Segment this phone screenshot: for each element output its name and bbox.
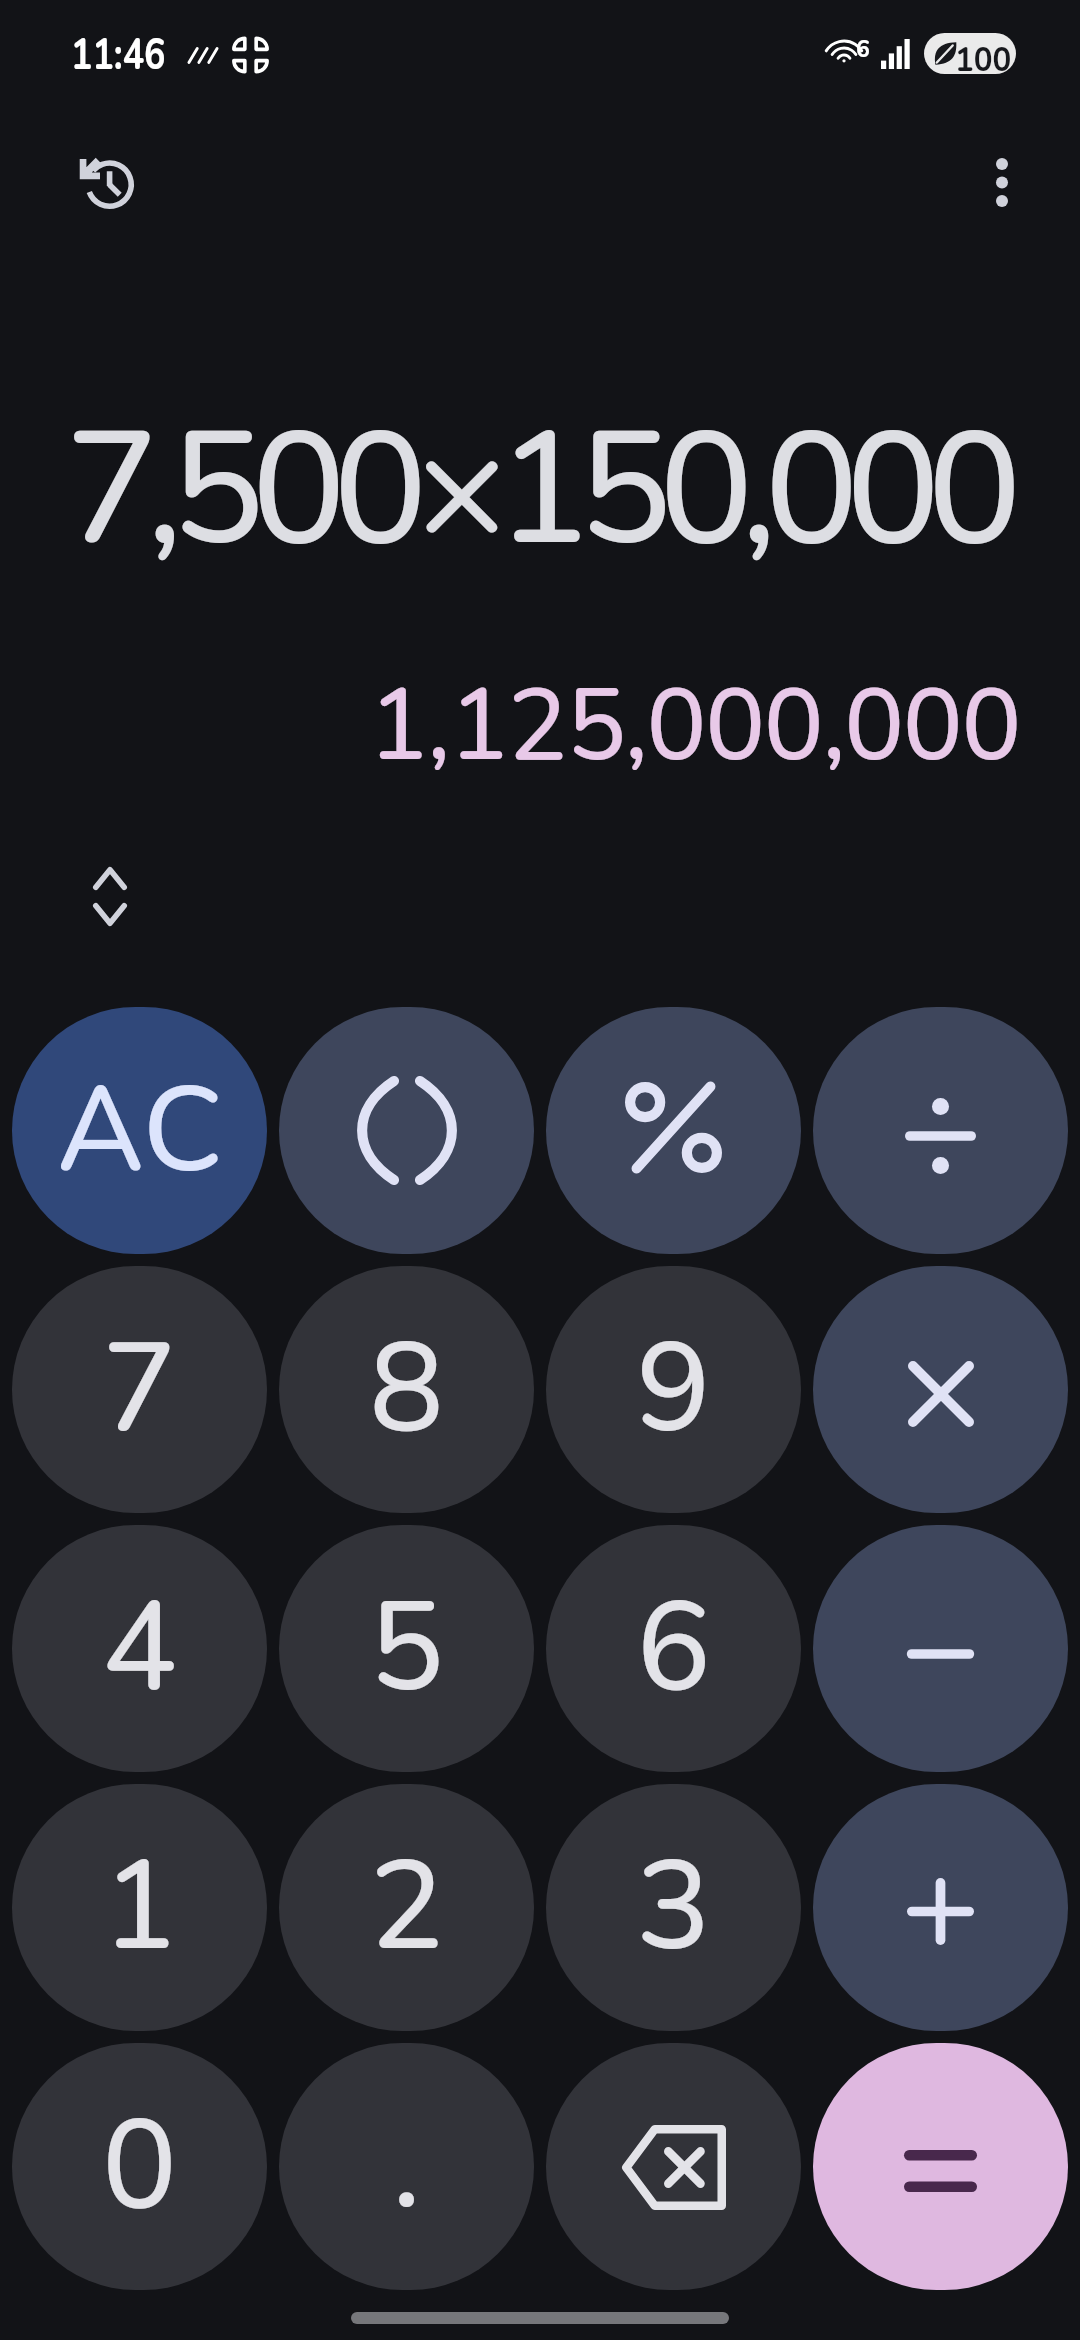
button[interactable]: 5 xyxy=(279,1525,534,1772)
button[interactable]: More options xyxy=(954,134,1050,230)
button[interactable]: 8 xyxy=(279,1266,534,1513)
staticText: 7 xyxy=(102,1304,177,1475)
button[interactable]: Percent xyxy=(546,1007,801,1254)
staticText: 4 xyxy=(102,1563,177,1734)
staticText: 7,500×150,000 xyxy=(0,383,1009,597)
button[interactable]: Backspace xyxy=(546,2043,801,2290)
staticText: 1,125,000,000 xyxy=(0,658,1020,794)
staticText: 100 xyxy=(955,37,1012,74)
button[interactable]: 9 xyxy=(546,1266,801,1513)
button[interactable]: 3 xyxy=(546,1784,801,2031)
button[interactable]: 7 xyxy=(12,1266,267,1513)
staticText: 6 xyxy=(856,34,870,65)
staticText: 8 xyxy=(369,1304,444,1475)
button[interactable]: Add xyxy=(813,1784,1068,2031)
button[interactable]: Divide xyxy=(813,1007,1068,1254)
button[interactable]: Expand xyxy=(62,848,158,944)
staticText: 0 xyxy=(102,2081,177,2252)
button[interactable]: Subtract xyxy=(813,1525,1068,1772)
button[interactable]: Multiply xyxy=(813,1266,1068,1513)
staticText: AC xyxy=(57,1050,223,1212)
staticText: 6 xyxy=(636,1563,711,1734)
staticText: 2 xyxy=(369,1822,444,1993)
button[interactable]: Equals xyxy=(813,2043,1068,2290)
staticText: 1 xyxy=(102,1822,177,1993)
staticText: 3 xyxy=(636,1822,711,1993)
button[interactable]: Parentheses xyxy=(279,1007,534,1254)
button[interactable]: History xyxy=(60,135,156,231)
staticText: . xyxy=(392,2081,421,2252)
staticText: 11:46 xyxy=(71,25,166,85)
button[interactable]: 6 xyxy=(546,1525,801,1772)
button[interactable]: 2 xyxy=(279,1784,534,2031)
staticText: 9 xyxy=(636,1304,711,1475)
button[interactable]: 0 xyxy=(12,2043,267,2290)
button[interactable]: 4 xyxy=(12,1525,267,1772)
button[interactable]: 1 xyxy=(12,1784,267,2031)
button[interactable]: AC xyxy=(12,1007,267,1254)
staticText: 5 xyxy=(369,1563,444,1734)
button[interactable]: . xyxy=(279,2043,534,2290)
